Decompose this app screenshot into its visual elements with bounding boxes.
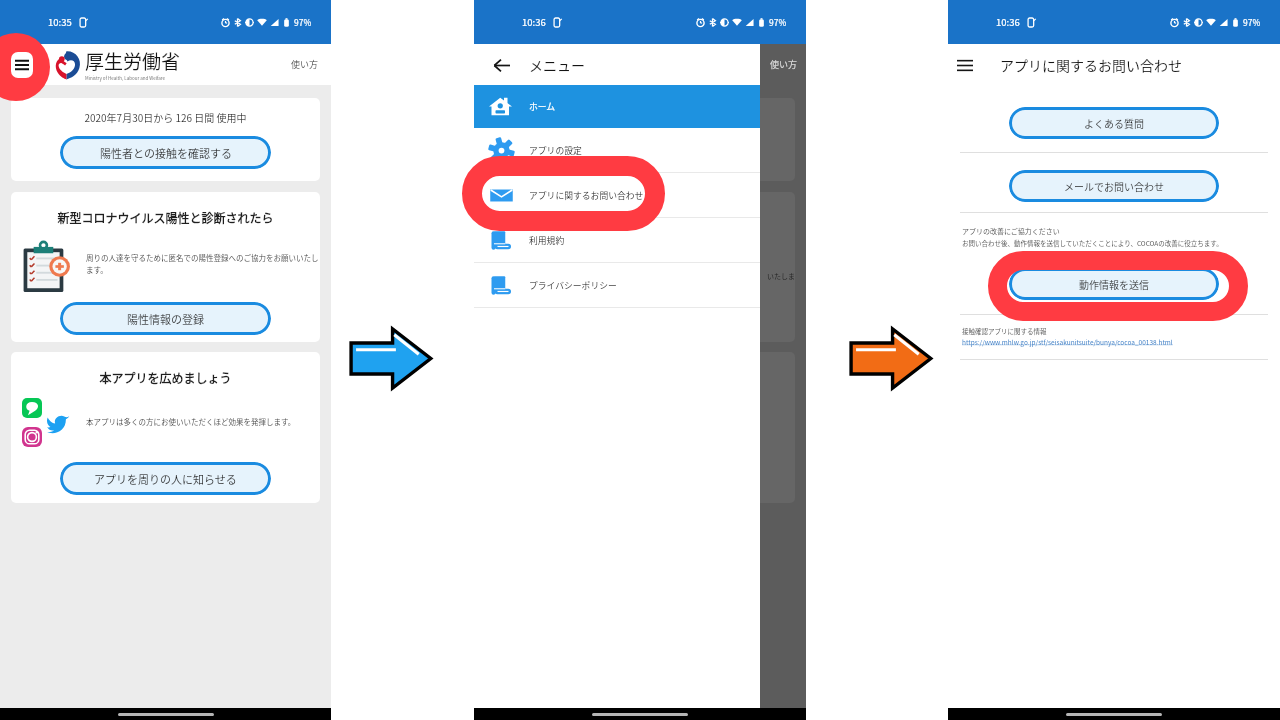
button[interactable]: Back xyxy=(489,53,513,77)
staticText: 本アプリは多くの方にお使いいただくほど効果を発揮します。 xyxy=(86,416,320,427)
staticText: 2020年7月30日から 126 日間 使用中 xyxy=(60,110,271,124)
button[interactable]: Menu xyxy=(4,47,40,83)
staticText: アプリに関するお問い合わせ xyxy=(1000,55,1182,75)
button[interactable]: 動作情報を送信 xyxy=(1009,268,1219,300)
staticText: 97% xyxy=(294,16,312,28)
staticText: 厚生労働省 xyxy=(85,47,181,75)
staticText: 新型コロナウイルス陽性と診断されたら xyxy=(11,209,320,226)
staticText: アプリの改善にご協力ください xyxy=(962,226,1060,236)
button[interactable]: ホーム xyxy=(474,85,760,128)
button[interactable]: アプリの設定 xyxy=(474,128,760,173)
button[interactable]: 使い方 xyxy=(287,54,323,75)
staticText: 97% xyxy=(769,16,787,28)
button[interactable]: 陽性者との接触を確認する xyxy=(60,136,271,169)
staticText: いたしま xyxy=(767,271,795,281)
button[interactable]: アプリに関するお問い合わせ xyxy=(474,173,760,218)
staticText: Ministry of Health, Labour and Welfare xyxy=(85,75,166,82)
staticText: 使い方 xyxy=(291,58,319,71)
staticText: 利用規約 xyxy=(529,234,565,247)
staticText: アプリを周りの人に知らせる xyxy=(94,471,237,487)
staticText: よくある質問 xyxy=(1084,116,1144,130)
button[interactable]: Menu xyxy=(952,52,978,78)
staticText: 10:36 xyxy=(522,15,546,29)
button[interactable]: 陽性情報の登録 xyxy=(60,302,271,335)
button[interactable]: プライバシーポリシー xyxy=(474,263,760,308)
staticText: メールでお問い合わせ xyxy=(1064,179,1164,193)
staticText: アプリに関するお問い合わせ xyxy=(529,189,644,202)
button[interactable]: https://www.mhlw.go.jp/stf/seisakunitsui… xyxy=(962,337,1173,346)
staticText: 陽性者との接触を確認する xyxy=(100,145,232,161)
button[interactable]: アプリを周りの人に知らせる xyxy=(60,462,271,495)
button[interactable]: メールでお問い合わせ xyxy=(1009,170,1219,202)
staticText: プライバシーポリシー xyxy=(529,279,617,292)
staticText: 本アプリを広めましょう xyxy=(11,369,320,386)
staticText: 10:35 xyxy=(48,15,72,29)
button[interactable]: よくある質問 xyxy=(1009,107,1219,139)
staticText: 10:36 xyxy=(996,15,1020,29)
staticText: 97% xyxy=(1243,16,1261,28)
staticText: 動作情報を送信 xyxy=(1079,277,1149,291)
button[interactable]: 利用規約 xyxy=(474,218,760,263)
staticText: ホーム xyxy=(529,100,556,113)
staticText: 接触確認アプリに関する情報 xyxy=(962,326,1047,335)
staticText: 周りの人達を守るために匿名での陽性登録へのご協力をお願いいたします。 xyxy=(86,252,320,276)
staticText: お問い合わせ後、動作情報を送信していただくことにより、COCOAの改善に役立ちま… xyxy=(962,238,1223,247)
staticText: 陽性情報の登録 xyxy=(127,311,204,327)
staticText: アプリの設定 xyxy=(529,144,582,157)
staticText: 使い方 xyxy=(770,58,798,71)
staticText: メニュー xyxy=(529,55,585,75)
